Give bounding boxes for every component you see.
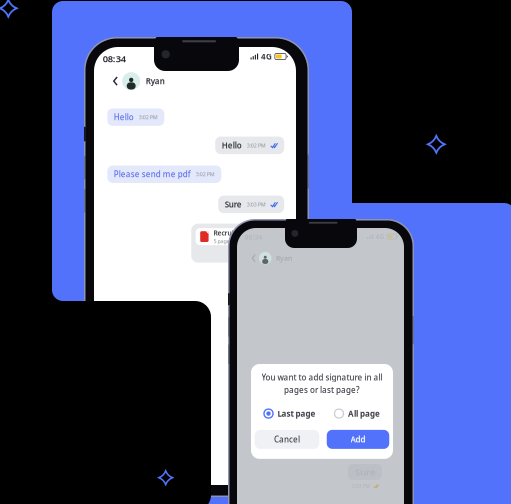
staticText: Sure [225,199,242,210]
staticText: Cancel [274,434,300,445]
staticText: Sure [355,466,375,478]
staticText: pages or last page? [284,385,360,395]
button[interactable]: Recruitment.pdf [191,224,284,263]
staticText: Please send me pdf [114,169,191,179]
staticText: Recruitment.pdf [214,228,266,237]
staticText: 4G [261,51,272,62]
staticText: Ryan [276,254,292,263]
staticText: 08:34 [244,233,262,242]
staticText: 08:34 [103,52,126,65]
button[interactable]: Add [327,430,389,449]
staticText: 4G [376,232,385,241]
button[interactable]: All page [334,408,380,419]
staticText: Add [350,434,365,445]
staticText: 3:03 PM [247,201,266,208]
staticText: Ryan [146,76,165,86]
staticText: 3:02 PM [196,171,215,178]
staticText: 3:02 PM [139,114,158,121]
staticText: 3:03 PM [352,482,371,490]
staticText: Hello [222,140,242,151]
staticText: 5 pages [214,238,233,245]
button[interactable]: Cancel [255,430,319,449]
button[interactable]: Back [108,72,122,90]
staticText: 3:02 PM [247,142,266,149]
staticText: Last page [277,408,315,419]
button[interactable]: Last page [264,408,315,419]
staticText: Hello [114,112,134,122]
staticText: All page [348,408,380,419]
staticText: You want to add signature in all [261,372,382,383]
